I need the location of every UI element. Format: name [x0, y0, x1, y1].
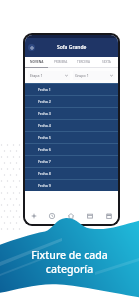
staticText: Etapa 1	[30, 73, 43, 78]
button[interactable]: Historial	[43, 208, 61, 224]
button[interactable]: Fecha 5	[25, 131, 118, 143]
staticText: Fecha 5	[38, 135, 51, 140]
staticText: Sofa Grande	[57, 44, 87, 51]
button[interactable]: Fecha 6	[25, 143, 118, 155]
button[interactable]: PRIMERA	[49, 60, 72, 64]
staticText: Fecha 3	[38, 111, 51, 116]
button[interactable]: SEXTA	[95, 60, 118, 64]
staticText: Fecha 7	[38, 159, 51, 164]
staticText: Grupo 1	[75, 73, 89, 78]
staticText: Fecha 6	[38, 147, 51, 152]
staticText: PRIMERA	[54, 60, 68, 64]
button[interactable]: NOVENA	[25, 60, 49, 64]
button[interactable]: Fecha 2	[25, 95, 118, 107]
button[interactable]: Etapa 1	[28, 71, 70, 80]
button[interactable]: Fecha 1	[25, 83, 118, 95]
button[interactable]: TERCERA	[72, 60, 95, 64]
staticText: Fecha 2	[38, 99, 51, 104]
staticText: Fecha 8	[38, 171, 51, 176]
staticText: TERCERA	[77, 60, 90, 64]
staticText: Fixture de cada categoría	[31, 248, 108, 276]
button[interactable]: Calendario	[99, 208, 118, 224]
staticText: NOVENA	[30, 60, 44, 64]
button[interactable]: Fecha 7	[25, 155, 118, 167]
staticText: Fecha 1	[38, 87, 51, 92]
button[interactable]: Tabla	[80, 208, 99, 224]
button[interactable]: Fecha 3	[25, 107, 118, 119]
button[interactable]: Fecha 4	[25, 119, 118, 131]
button[interactable]: Fecha 8	[25, 167, 118, 179]
button[interactable]: Fecha 9	[25, 179, 118, 191]
button[interactable]: Inicio	[61, 208, 80, 224]
staticText: Fecha 4	[38, 123, 51, 128]
staticText: Fecha 9	[38, 183, 51, 188]
button[interactable]: Grupo 1	[73, 71, 115, 80]
button[interactable]: Destacados	[25, 208, 43, 224]
staticText: SEXTA	[102, 60, 111, 64]
button[interactable]: Menu	[28, 44, 35, 51]
